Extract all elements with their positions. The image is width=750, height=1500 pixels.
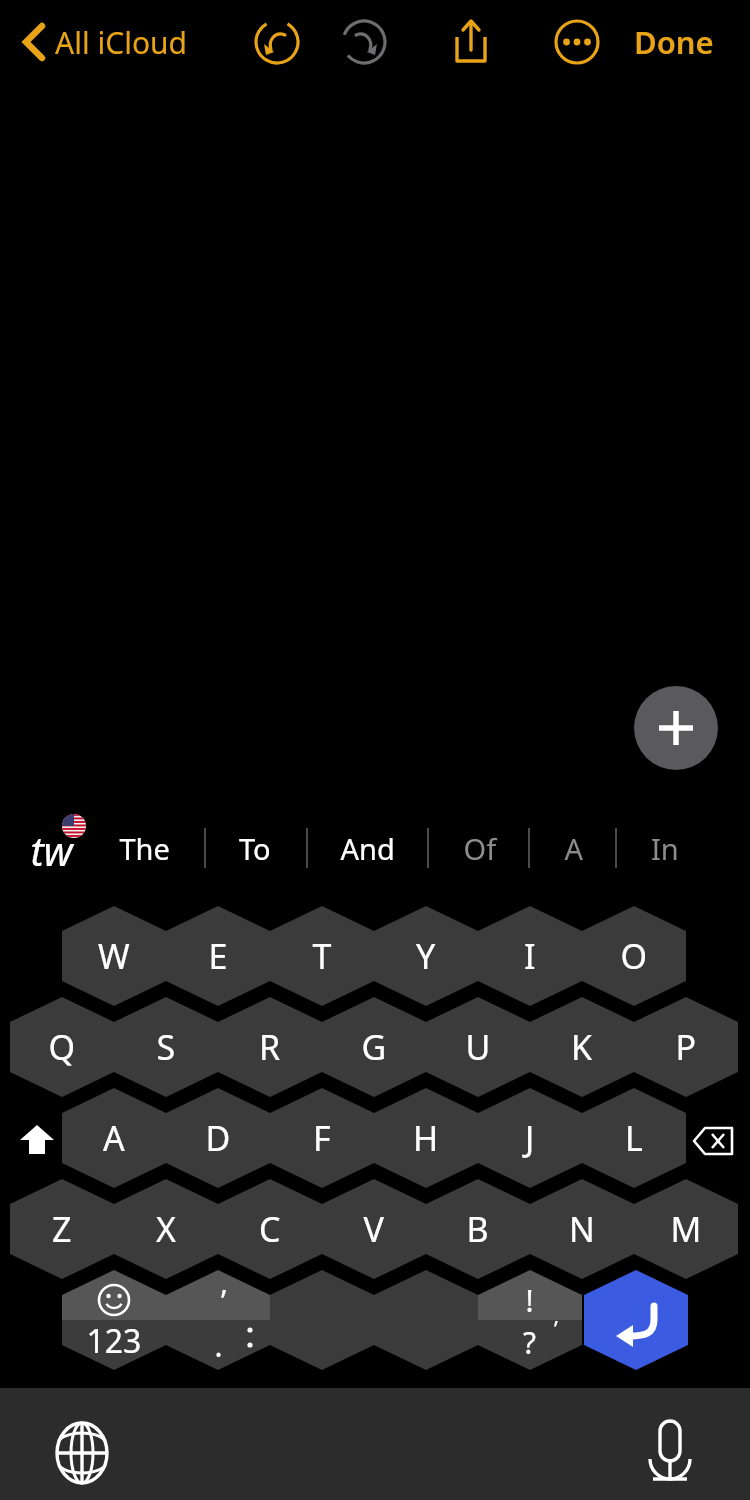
button[interactable]: A (62, 1088, 166, 1188)
button[interactable]: Z (10, 1179, 114, 1279)
button[interactable]: O (582, 906, 686, 1006)
button[interactable]: Add attachment (634, 686, 718, 770)
button[interactable]: Switch keyboard (40, 1412, 124, 1496)
button[interactable]: Numbers and emoji (62, 1270, 166, 1370)
button[interactable]: G (322, 997, 426, 1097)
button[interactable]: B (426, 1179, 530, 1279)
button[interactable]: Backspace (686, 1112, 742, 1168)
button[interactable]: To (210, 818, 304, 878)
button[interactable]: All iCloud (8, 8, 218, 72)
button[interactable]: Typewise keyboard settings (18, 818, 98, 878)
button[interactable]: N (530, 1179, 634, 1279)
button[interactable]: W (62, 906, 166, 1006)
button[interactable]: Return (584, 1270, 688, 1370)
button[interactable]: X (114, 1179, 218, 1279)
button[interactable]: Exclamation and question mark (478, 1270, 582, 1370)
button[interactable]: P (634, 997, 738, 1097)
button[interactable]: L (582, 1088, 686, 1188)
button[interactable]: Q (10, 997, 114, 1097)
button[interactable]: C (218, 1179, 322, 1279)
button[interactable]: And (312, 818, 424, 878)
button[interactable]: J (478, 1088, 582, 1188)
button[interactable]: In (620, 818, 708, 878)
button[interactable]: M (634, 1179, 738, 1279)
button[interactable]: V (322, 1179, 426, 1279)
button[interactable]: F (270, 1088, 374, 1188)
button[interactable]: Share (439, 8, 503, 72)
button[interactable]: Space (374, 1270, 478, 1370)
button[interactable]: E (166, 906, 270, 1006)
button[interactable]: More options (545, 8, 609, 72)
button[interactable]: H (374, 1088, 478, 1188)
button[interactable]: Undo (245, 8, 309, 72)
button[interactable]: Shift (8, 1110, 66, 1168)
button[interactable]: K (530, 997, 634, 1097)
button[interactable]: A (533, 818, 613, 878)
button[interactable]: The (106, 818, 202, 878)
button[interactable]: Redo (332, 8, 396, 72)
button[interactable]: Punctuation (166, 1270, 270, 1370)
button[interactable]: Y (374, 906, 478, 1006)
button[interactable]: R (218, 997, 322, 1097)
button[interactable]: I (478, 906, 582, 1006)
button[interactable]: Of (432, 818, 526, 878)
button[interactable]: D (166, 1088, 270, 1188)
button[interactable]: T (270, 906, 374, 1006)
button[interactable]: U (426, 997, 530, 1097)
button[interactable]: Voice input (628, 1412, 712, 1496)
button[interactable]: Done (628, 8, 734, 72)
button[interactable]: S (114, 997, 218, 1097)
button[interactable]: Space (270, 1270, 374, 1370)
